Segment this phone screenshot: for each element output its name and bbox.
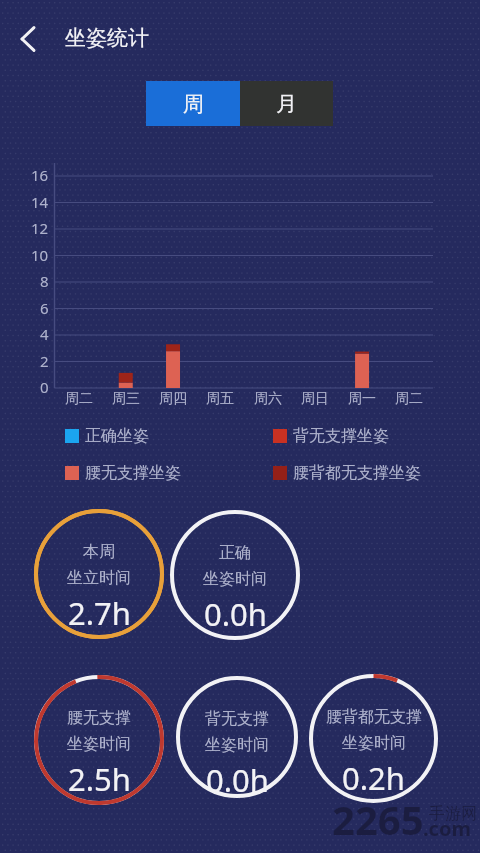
button[interactable]: 月 <box>240 81 333 126</box>
staticText: 8 <box>40 271 49 291</box>
staticText: 本周 <box>83 542 115 562</box>
staticText: 2.7h <box>68 592 131 634</box>
button[interactable]: Back <box>6 17 50 61</box>
staticText: 6 <box>40 298 49 318</box>
staticText: 周四 <box>159 390 187 408</box>
staticText: 0.2h <box>342 757 405 799</box>
button[interactable]: 周 <box>146 81 240 126</box>
staticText: 周五 <box>206 390 234 408</box>
staticText: 背无支撑坐姿 <box>293 426 389 446</box>
staticText: 周 <box>183 91 204 117</box>
staticText: 腰无支撑 <box>67 708 131 728</box>
staticText: 腰背都无支撑 <box>326 707 422 727</box>
staticText: 腰无支撑坐姿 <box>85 463 181 483</box>
staticText: 2265 <box>332 792 424 846</box>
staticText: 0 <box>40 377 49 397</box>
staticText: 正确 <box>219 543 251 563</box>
staticText: .com <box>423 815 471 842</box>
staticText: 手游网 <box>429 804 477 824</box>
staticText: 0.0h <box>204 593 267 635</box>
staticText: 坐姿时间 <box>342 733 406 753</box>
button[interactable]: 腰背都无支撑坐姿 <box>273 463 421 483</box>
staticText: 0.0h <box>206 759 269 801</box>
staticText: 14 <box>31 192 49 212</box>
staticText: 周一 <box>348 390 376 408</box>
staticText: 背无支撑 <box>205 709 269 729</box>
staticText: 周二 <box>395 390 423 408</box>
staticText: 坐姿时间 <box>67 734 131 754</box>
staticText: 周三 <box>112 390 140 408</box>
staticText: 坐姿统计 <box>65 25 149 51</box>
staticText: 月 <box>276 91 297 117</box>
staticText: 腰背都无支撑坐姿 <box>293 463 421 483</box>
staticText: 正确坐姿 <box>85 426 149 446</box>
staticText: 4 <box>40 324 49 344</box>
button[interactable]: 腰无支撑 <box>34 675 164 805</box>
staticText: 坐姿时间 <box>205 735 269 755</box>
staticText: 坐立时间 <box>67 568 131 588</box>
button[interactable]: 腰无支撑坐姿 <box>65 463 181 483</box>
button[interactable]: 本周 <box>34 509 164 639</box>
staticText: 周六 <box>254 390 282 408</box>
staticText: 2 <box>40 351 49 371</box>
staticText: 周二 <box>65 390 93 408</box>
staticText: 2.5h <box>68 758 131 800</box>
staticText: 16 <box>31 165 49 185</box>
staticText: 坐姿时间 <box>203 569 267 589</box>
button[interactable]: 背无支撑坐姿 <box>273 426 389 446</box>
button[interactable]: 正确坐姿 <box>65 426 149 446</box>
staticText: 10 <box>31 245 49 265</box>
staticText: 周日 <box>301 390 329 408</box>
button[interactable]: 背无支撑 <box>176 676 298 798</box>
button[interactable]: 正确 <box>170 510 300 640</box>
button[interactable]: 腰背都无支撑 <box>309 674 438 803</box>
staticText: 12 <box>31 218 49 238</box>
